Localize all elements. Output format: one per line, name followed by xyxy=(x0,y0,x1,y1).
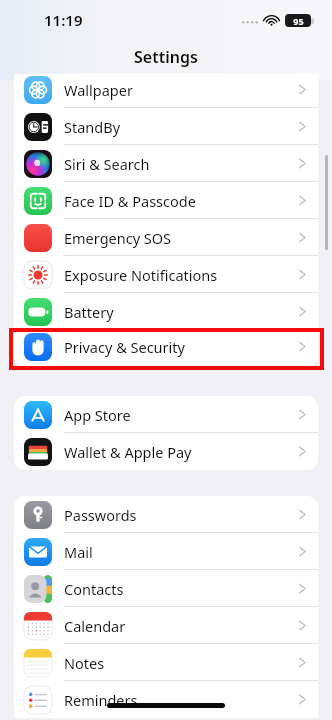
button[interactable]: Reminders xyxy=(14,681,318,718)
button[interactable]: Exposure Notifications xyxy=(14,256,318,293)
staticText: Emergency SOS xyxy=(64,228,297,248)
button[interactable]: Passwords xyxy=(14,496,318,533)
staticText: Mail xyxy=(64,542,297,562)
staticText: Wallpaper xyxy=(64,80,297,100)
staticText: Notes xyxy=(64,653,297,673)
staticText: Contacts xyxy=(64,579,297,599)
button[interactable]: Wallpaper xyxy=(14,74,318,108)
button[interactable]: Siri & Search xyxy=(14,145,318,182)
staticText: StandBy xyxy=(64,117,297,137)
staticText: Exposure Notifications xyxy=(64,265,297,285)
button[interactable]: Battery xyxy=(14,293,318,330)
staticText: Privacy & Security xyxy=(64,337,297,357)
button[interactable]: Face ID & Passcode xyxy=(14,182,318,219)
staticText: Face ID & Passcode xyxy=(64,191,297,211)
button[interactable]: App Store xyxy=(14,396,318,433)
button[interactable]: Mail xyxy=(14,533,318,570)
button[interactable]: Emergency SOS xyxy=(14,219,318,256)
staticText: Calendar xyxy=(64,616,297,636)
staticText: App Store xyxy=(64,405,297,425)
staticText: Siri & Search xyxy=(64,154,297,174)
staticText: Wallet & Apple Pay xyxy=(64,442,297,462)
button[interactable]: StandBy xyxy=(14,108,318,145)
button[interactable]: Privacy & Security xyxy=(14,330,318,363)
button[interactable]: Calendar xyxy=(14,607,318,644)
button[interactable]: Privacy & Security highlighted xyxy=(11,330,322,368)
staticText: Settings xyxy=(134,46,198,68)
button[interactable]: Wallet & Apple Pay xyxy=(14,433,318,470)
staticText: 11:19 xyxy=(44,10,83,30)
staticText: Passwords xyxy=(64,505,297,525)
button[interactable]: Notes xyxy=(14,644,318,681)
button[interactable]: Contacts xyxy=(14,570,318,607)
staticText: 95 xyxy=(293,15,304,27)
staticText: Battery xyxy=(64,302,297,322)
staticText: Reminders xyxy=(64,690,297,710)
